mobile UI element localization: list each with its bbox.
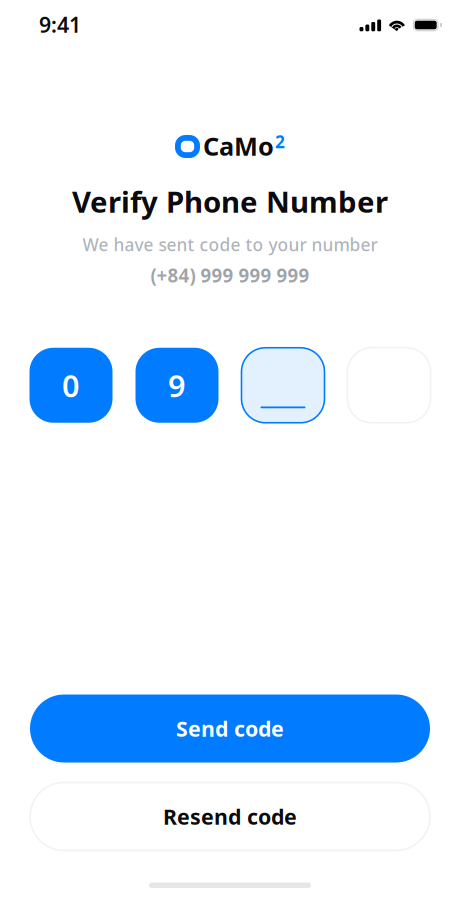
staticText: (+84) 999 999 999 bbox=[150, 263, 309, 288]
staticText: Resend code bbox=[163, 802, 297, 831]
staticText: 0 bbox=[62, 365, 80, 406]
button[interactable]: 9 bbox=[135, 348, 218, 423]
staticText: 2 bbox=[275, 130, 285, 153]
staticText: CaMo bbox=[203, 129, 274, 163]
staticText: Send code bbox=[176, 714, 284, 743]
staticText: Verify Phone Number bbox=[72, 182, 388, 221]
button[interactable]: Resend code bbox=[30, 782, 430, 850]
button[interactable]: 0 bbox=[29, 348, 112, 423]
staticText: 9:41 bbox=[39, 10, 81, 39]
button[interactable]: Send code bbox=[30, 694, 430, 762]
staticText: We have sent code to your number bbox=[82, 233, 377, 256]
button[interactable] bbox=[241, 348, 324, 423]
staticText: 9 bbox=[168, 365, 186, 406]
